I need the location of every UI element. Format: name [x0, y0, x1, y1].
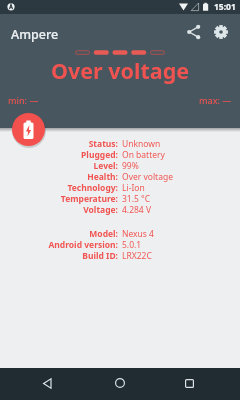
staticText: Over voltage: [122, 171, 173, 182]
staticText: Unknown: [122, 138, 161, 149]
button[interactable]: [213, 24, 229, 40]
button[interactable]: [186, 24, 202, 40]
staticText: 99%: [122, 160, 139, 171]
staticText: Health:: [0, 171, 118, 182]
staticText: 5.0.1: [122, 239, 142, 250]
staticText: max: —: [199, 94, 232, 106]
button[interactable]: [109, 372, 131, 394]
button[interactable]: [178, 372, 200, 394]
staticText: Build ID:: [0, 250, 118, 261]
staticText: On battery: [122, 149, 165, 160]
staticText: Status:: [0, 138, 118, 149]
staticText: 15:01: [214, 1, 236, 13]
staticText: Model:: [0, 228, 118, 239]
staticText: Plugged:: [0, 149, 118, 160]
button[interactable]: [12, 113, 45, 146]
staticText: Technology:: [0, 182, 118, 193]
staticText: Ampere: [11, 26, 59, 43]
button[interactable]: [36, 372, 58, 394]
staticText: Voltage:: [0, 204, 118, 215]
staticText: Nexus 4: [122, 228, 154, 239]
staticText: Level:: [0, 160, 118, 171]
staticText: min: —: [8, 94, 39, 106]
staticText: 31.5 °C: [122, 193, 151, 204]
staticText: 4.284 V: [122, 204, 152, 215]
staticText: Li-Ion: [122, 182, 145, 193]
staticText: Android version:: [0, 239, 118, 250]
staticText: LRX22C: [122, 250, 152, 261]
staticText: Over voltage: [51, 56, 190, 85]
staticText: Temperature:: [0, 193, 118, 204]
